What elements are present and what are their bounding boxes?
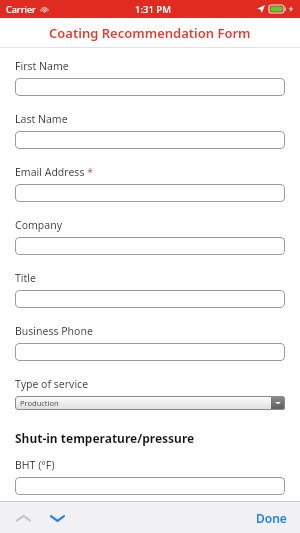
button[interactable] <box>15 290 285 308</box>
staticText: Shut-in temperature/pressure <box>15 430 195 446</box>
button[interactable] <box>15 343 285 361</box>
staticText: First Name <box>15 59 69 73</box>
button[interactable] <box>15 131 285 149</box>
staticText: Business Phone <box>15 324 93 338</box>
staticText: Carrier <box>6 3 36 15</box>
staticText: 1:31 PM <box>135 3 171 16</box>
staticText: Coating Recommendation Form <box>49 24 251 42</box>
staticText: Company <box>15 218 62 232</box>
button[interactable] <box>15 237 285 255</box>
button[interactable]: Next field <box>44 505 70 531</box>
staticText: Done <box>256 510 287 526</box>
button[interactable]: Production <box>15 396 285 410</box>
button[interactable] <box>15 78 285 96</box>
button[interactable]: Previous field <box>10 505 36 531</box>
staticText: Title <box>15 271 36 285</box>
staticText: Email Address * <box>15 165 93 179</box>
button[interactable] <box>15 477 285 495</box>
staticText: Last Name <box>15 112 68 126</box>
button[interactable] <box>15 184 285 202</box>
staticText: BHT (°F) <box>15 458 55 472</box>
staticText: Production <box>20 398 59 408</box>
button[interactable]: Done <box>256 510 287 526</box>
staticText: Type of service <box>15 377 89 391</box>
